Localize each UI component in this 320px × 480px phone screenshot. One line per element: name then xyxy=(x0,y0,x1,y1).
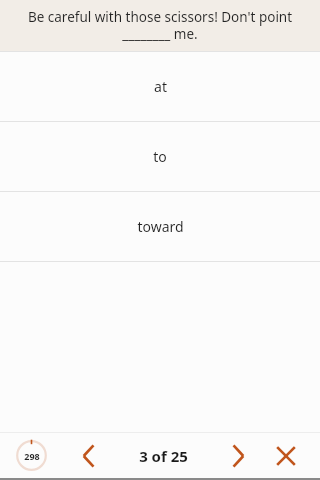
staticText: to xyxy=(153,147,167,166)
staticText: Be careful with those scissors! Don't po… xyxy=(14,8,306,43)
staticText: 298 xyxy=(24,450,40,462)
staticText: at xyxy=(154,77,167,96)
button[interactable]: Score 298 xyxy=(16,440,47,471)
button[interactable]: at xyxy=(0,52,320,121)
staticText: toward xyxy=(137,217,184,236)
button[interactable]: toward xyxy=(0,192,320,261)
staticText: 3 of 25 xyxy=(139,446,188,466)
button[interactable]: to xyxy=(0,122,320,191)
button[interactable]: Close xyxy=(266,436,306,476)
button[interactable]: 3 of 25 xyxy=(109,446,218,466)
button[interactable]: Previous xyxy=(69,436,109,476)
button[interactable]: Next xyxy=(218,436,258,476)
